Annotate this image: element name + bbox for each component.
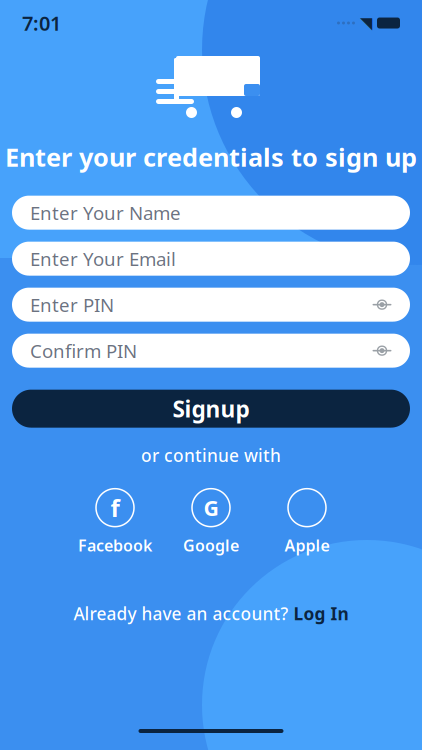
button[interactable]: Confirm PIN (12, 334, 410, 368)
staticText: Facebook (78, 535, 152, 556)
staticText: Confirm PIN (30, 338, 137, 363)
staticText: or continue with (141, 444, 281, 467)
button[interactable] (259, 489, 355, 556)
staticText: Log In (293, 602, 348, 625)
staticText: ◥ (360, 14, 372, 32)
staticText: Already have an account? (73, 602, 288, 625)
button[interactable]: Already have an account? (73, 602, 348, 625)
staticText: Enter your credentials to sign up (5, 140, 417, 174)
staticText: Apple (284, 535, 329, 556)
staticText: Google (183, 535, 239, 556)
staticText: Enter PIN (30, 292, 114, 317)
staticText: 7:01 (22, 10, 61, 36)
button[interactable]: f (67, 489, 163, 556)
staticText: Enter Your Email (30, 246, 176, 271)
button[interactable]: Enter PIN (12, 288, 410, 322)
button[interactable]: Enter Your Name (12, 196, 410, 230)
button[interactable]: G (163, 489, 259, 556)
button[interactable]: Signup (12, 390, 410, 428)
staticText: Enter Your Name (30, 200, 181, 225)
staticText: G (203, 493, 218, 522)
staticText: Signup (172, 394, 249, 424)
button[interactable]: Enter Your Email (12, 242, 410, 276)
staticText: f (110, 492, 119, 524)
